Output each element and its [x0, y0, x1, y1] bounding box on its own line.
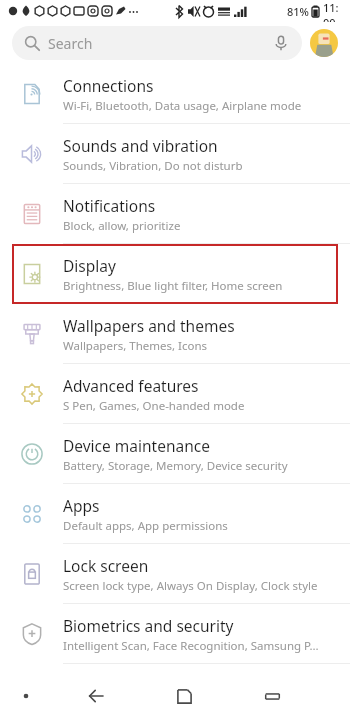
- button[interactable]: Home: [140, 672, 228, 720]
- staticText: Wallpapers, Themes, Icons: [63, 338, 208, 354]
- button[interactable]: Notifications: [0, 184, 350, 244]
- button[interactable]: Device maintenance: [0, 424, 350, 484]
- staticText: Lock screen: [63, 555, 149, 576]
- button[interactable]: Menu indicator: [0, 672, 52, 720]
- staticText: Intelligent Scan, Face Recognition, Sams…: [63, 638, 319, 654]
- button[interactable]: Biometrics and security: [0, 604, 350, 664]
- staticText: Notifications: [63, 195, 156, 216]
- staticText: Apps: [63, 495, 100, 516]
- staticText: Default apps, App permissions: [63, 518, 228, 534]
- staticText: Sounds, Vibration, Do not disturb: [63, 158, 243, 174]
- button[interactable]: Apps: [0, 484, 350, 544]
- staticText: 11:00 AM: [323, 0, 344, 22]
- button[interactable]: Profile: [310, 29, 338, 57]
- staticText: 81%: [287, 4, 309, 19]
- button[interactable]: Recent apps: [228, 672, 316, 720]
- staticText: Wallpapers and themes: [63, 315, 235, 336]
- staticText: Brightness, Blue light filter, Home scre…: [63, 278, 283, 294]
- button[interactable]: Display: [0, 244, 350, 304]
- button[interactable]: Back: [52, 672, 140, 720]
- button[interactable]: Voice search: [272, 34, 290, 52]
- staticText: Biometrics and security: [63, 615, 234, 636]
- button[interactable]: Sounds and vibration: [0, 124, 350, 184]
- button[interactable]: Wallpapers and themes: [0, 304, 350, 364]
- staticText: S Pen, Games, One-handed mode: [63, 398, 245, 414]
- staticText: Search: [48, 34, 93, 53]
- staticText: Block, allow, prioritize: [63, 218, 181, 234]
- staticText: Connections: [63, 75, 154, 96]
- staticText: Wi-Fi, Bluetooth, Data usage, Airplane m…: [63, 98, 302, 114]
- staticText: Advanced features: [63, 375, 199, 396]
- button[interactable]: Lock screen: [0, 544, 350, 604]
- staticText: Screen lock type, Always On Display, Clo…: [63, 578, 318, 594]
- button[interactable]: Search: [12, 26, 302, 60]
- staticText: Sounds and vibration: [63, 135, 218, 156]
- staticText: Device maintenance: [63, 435, 210, 456]
- staticText: Battery, Storage, Memory, Device securit…: [63, 458, 288, 474]
- button[interactable]: Connections: [0, 64, 350, 124]
- staticText: Display: [63, 255, 116, 276]
- button[interactable]: Advanced features: [0, 364, 350, 424]
